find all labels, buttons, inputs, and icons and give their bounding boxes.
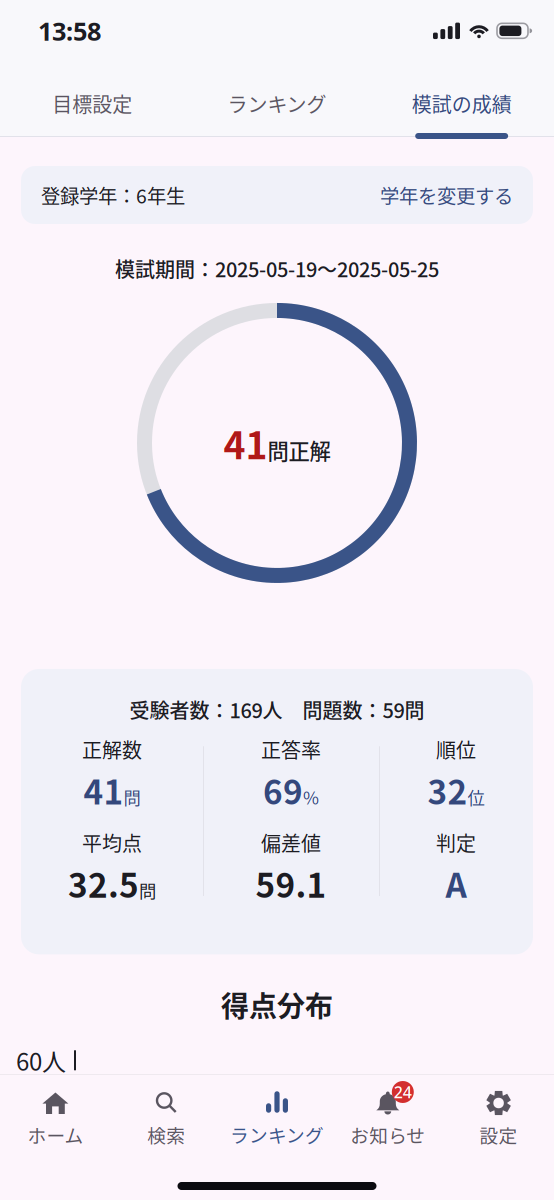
staticText: 41 (83, 766, 123, 814)
staticText: 設定 (480, 1121, 518, 1148)
staticText: 13:58 (38, 14, 101, 48)
button[interactable]: 模試の成績 (369, 58, 554, 136)
staticText: 受験者数：169人 問題数：59問 (129, 695, 424, 724)
staticText: 問 (139, 878, 156, 903)
staticText: 平均点 (82, 828, 142, 857)
staticText: 24 (394, 1081, 412, 1103)
staticText: 偏差値 (261, 828, 321, 857)
staticText: 32 (427, 766, 467, 814)
staticText: 得点分布 (221, 984, 333, 1025)
staticText: 学年を変更する (380, 181, 513, 209)
staticText: 問正解 (267, 434, 330, 465)
staticText: 判定 (436, 828, 476, 857)
staticText: ランキング (230, 1121, 324, 1148)
staticText: 問 (123, 784, 140, 809)
button[interactable]: ホーム (0, 1090, 111, 1148)
button[interactable]: ランキング (222, 1090, 332, 1148)
button[interactable]: 24 (332, 1090, 443, 1148)
staticText: お知らせ (350, 1121, 425, 1148)
staticText: 32.5 (68, 859, 139, 907)
staticText: 59.1 (255, 859, 326, 907)
button[interactable]: ランキング (185, 58, 369, 136)
staticText: 69 (263, 766, 303, 814)
staticText: 位 (467, 784, 484, 809)
staticText: ランキング (227, 89, 326, 118)
button[interactable]: 検索 (111, 1090, 222, 1148)
staticText: A (445, 859, 466, 907)
staticText: 模試の成績 (412, 89, 512, 118)
staticText: 41 (223, 416, 267, 470)
staticText: 正解数 (82, 735, 142, 764)
button[interactable]: 設定 (443, 1090, 554, 1148)
staticText: ホーム (27, 1121, 83, 1148)
button[interactable]: 目標設定 (0, 58, 185, 136)
staticText: 正答率 (261, 735, 321, 764)
staticText: 模試期間：2025-05-19〜2025-05-25 (115, 254, 439, 283)
staticText: 目標設定 (52, 89, 132, 118)
staticText: % (303, 784, 319, 809)
button[interactable]: 登録学年：6年生 (21, 166, 533, 224)
staticText: 登録学年：6年生 (41, 181, 185, 209)
staticText: 60人 (16, 1043, 66, 1078)
staticText: 検索 (147, 1121, 185, 1148)
staticText: 順位 (436, 735, 476, 764)
